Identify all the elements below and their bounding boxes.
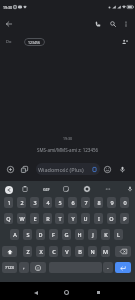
button[interactable]: Backspace [115,246,131,257]
button[interactable]: A [10,229,19,240]
staticText: 2 [20,199,24,206]
staticText: Wiadomość (Plus) [38,166,84,173]
button[interactable]: L [114,229,123,240]
staticText: P [123,215,127,222]
button[interactable]: Add attachment [3,162,17,176]
button[interactable]: Back [1,16,16,31]
button[interactable]: 6 [68,197,77,208]
staticText: 0 [123,199,127,206]
button[interactable]: 2 [17,197,26,208]
button[interactable]: S [23,229,32,240]
staticText: ?123 [5,265,14,270]
button[interactable]: G [62,229,71,240]
button[interactable]: Settings [81,183,93,195]
button[interactable]: Shift [2,246,17,257]
button[interactable]: H [75,229,84,240]
staticText: R [46,215,50,222]
staticText: Do [6,39,12,44]
button[interactable]: 4 [43,197,52,208]
button[interactable]: B [75,246,84,257]
staticText: 123456 [28,40,41,45]
staticText: GIF [43,187,50,192]
button[interactable]: E [30,213,39,224]
button[interactable]: 8 [94,197,103,208]
button[interactable]: 7 [81,197,90,208]
button[interactable]: 9 [107,197,116,208]
button[interactable]: 0 [120,197,129,208]
button[interactable]: Enter [115,262,131,273]
staticText: 19:30 [3,5,12,10]
staticText: 5 [58,199,62,206]
button[interactable]: Expand toolbar [3,184,14,195]
button[interactable]: Wiadomość (Plus) [36,163,100,175]
button[interactable]: F [49,229,58,240]
button[interactable]: 123456 [24,38,45,46]
staticText: V [65,248,69,255]
staticText: K [104,231,108,238]
button[interactable]: . [103,262,113,273]
button[interactable]: Stickers [60,183,72,195]
button[interactable]: D [36,229,45,240]
button[interactable]: ?123 [2,262,17,273]
button[interactable]: R [43,213,52,224]
staticText: H [77,231,82,238]
staticText: 4 [46,199,50,206]
staticText: O [109,215,114,222]
staticText: 1 [7,199,11,206]
button[interactable]: U [81,213,90,224]
button[interactable]: More [102,183,114,195]
button[interactable]: X [36,246,45,257]
button[interactable]: Voice input [124,183,135,195]
staticText: 8 [97,199,101,206]
button[interactable]: Voice message [116,163,129,176]
button[interactable]: P [120,213,129,224]
staticText: X [39,248,43,255]
button[interactable]: Z [23,246,32,257]
button[interactable]: Emoji [30,262,46,273]
staticText: N [90,248,95,255]
button[interactable]: Clipboard [19,183,31,195]
staticText: G [64,231,69,238]
button[interactable]: I [94,213,103,224]
button[interactable]: Q [4,213,13,224]
button[interactable]: , [19,262,29,273]
staticText: 6 [71,199,75,206]
button[interactable]: GIF [40,183,52,195]
button[interactable]: N [88,246,97,257]
staticText: . [107,264,109,271]
staticText: Q [6,215,11,222]
button[interactable]: Y [68,213,77,224]
staticText: I [98,215,100,222]
button[interactable]: 1 [4,197,13,208]
button[interactable]: O [107,213,116,224]
button[interactable]: More options [118,16,133,31]
button[interactable]: Camera [17,162,31,176]
button[interactable]: K [101,229,110,240]
staticText: B [78,248,82,255]
button[interactable]: Emoji [101,163,114,176]
button[interactable]: Back [27,284,44,300]
staticText: S [26,231,30,238]
staticText: L [117,231,120,238]
button[interactable]: C [49,246,58,257]
button[interactable]: Search [105,16,120,31]
button[interactable]: J [88,229,97,240]
staticText: 19:30 [63,136,72,141]
staticText: Y [71,215,75,222]
button[interactable]: W [17,213,26,224]
button[interactable]: V [62,246,71,257]
button[interactable]: Home [58,284,75,300]
button[interactable]: Recents [90,284,107,300]
staticText: D [38,231,43,238]
button[interactable]: 3 [30,197,39,208]
button[interactable]: 5 [55,197,64,208]
button[interactable]: Add contact [118,35,131,48]
button[interactable]: Call [90,16,105,31]
staticText: Z [26,248,30,255]
staticText: E [33,215,37,222]
staticText: U [83,215,88,222]
button[interactable]: M [101,246,110,257]
staticText: 9 [110,199,114,206]
button[interactable]: T [55,213,64,224]
